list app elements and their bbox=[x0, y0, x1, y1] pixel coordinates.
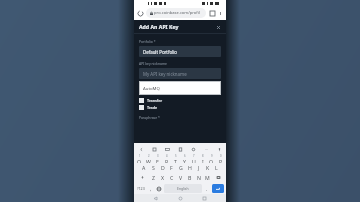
staticText: . bbox=[206, 186, 208, 192]
staticText: Portfolio * bbox=[139, 39, 156, 44]
button[interactable]: 6 bbox=[180, 154, 189, 163]
staticText: 8 bbox=[202, 154, 204, 158]
staticText: S bbox=[152, 164, 155, 171]
button[interactable]: M bbox=[203, 172, 212, 183]
button[interactable]: C bbox=[167, 172, 176, 183]
button[interactable]: A bbox=[139, 163, 149, 172]
staticText: V bbox=[179, 174, 183, 181]
staticText: My API key nickname bbox=[143, 71, 187, 77]
button[interactable]: 5 bbox=[171, 154, 180, 163]
button[interactable]: G bbox=[176, 163, 185, 172]
staticText: Q bbox=[137, 158, 142, 163]
button[interactable]: X bbox=[158, 172, 167, 183]
staticText: Default Portfolio bbox=[143, 49, 178, 55]
button[interactable]: H bbox=[185, 163, 194, 172]
staticText: I bbox=[202, 158, 204, 163]
button[interactable]: My API key nickname bbox=[139, 68, 221, 79]
staticText: E bbox=[156, 158, 159, 163]
staticText: K bbox=[206, 164, 210, 171]
button[interactable]: English bbox=[164, 184, 202, 193]
button[interactable]: 0 bbox=[216, 154, 225, 163]
button[interactable]: Address bar bbox=[146, 8, 206, 18]
staticText: 9 bbox=[211, 154, 213, 158]
button[interactable]: Trade bbox=[139, 105, 221, 110]
button[interactable]: L bbox=[212, 163, 221, 172]
staticText: U bbox=[192, 158, 196, 163]
button[interactable]: Clipboard bbox=[176, 145, 184, 153]
button[interactable]: Recent apps bbox=[201, 195, 208, 202]
button[interactable]: Home bbox=[177, 195, 184, 202]
staticText: F bbox=[170, 164, 173, 171]
button[interactable]: Back bbox=[137, 145, 145, 153]
staticText: 3 bbox=[157, 154, 159, 158]
button[interactable]: Backspace bbox=[212, 172, 225, 183]
button[interactable]: 7 bbox=[189, 154, 198, 163]
staticText: 0 bbox=[220, 154, 222, 158]
staticText: 2 bbox=[148, 154, 150, 158]
staticText: G bbox=[179, 164, 183, 171]
button[interactable]: J bbox=[194, 163, 203, 172]
button[interactable]: Default Portfolio bbox=[139, 46, 221, 57]
button[interactable]: Transfer bbox=[139, 98, 221, 103]
button[interactable]: 2 bbox=[144, 154, 153, 163]
staticText: API key nickname bbox=[139, 61, 168, 66]
button[interactable]: 1 bbox=[135, 154, 144, 163]
staticText: N bbox=[197, 174, 201, 181]
staticText: , bbox=[150, 186, 152, 192]
button[interactable]: V bbox=[176, 172, 185, 183]
button[interactable]: Z bbox=[149, 172, 158, 183]
staticText: pro.coinbase.com/profil bbox=[154, 10, 200, 16]
button[interactable]: Shift bbox=[135, 172, 149, 183]
staticText: L bbox=[215, 164, 218, 171]
staticText: 4 bbox=[166, 154, 168, 158]
button[interactable]: , bbox=[147, 183, 155, 194]
staticText: Z bbox=[152, 174, 155, 181]
button[interactable]: Enter bbox=[212, 184, 224, 193]
button[interactable]: Settings bbox=[189, 145, 197, 153]
staticText: P bbox=[219, 158, 223, 163]
button[interactable]: 9 bbox=[207, 154, 216, 163]
button[interactable]: Voice input bbox=[215, 145, 223, 153]
staticText: H bbox=[188, 164, 192, 171]
staticText: A bbox=[142, 164, 146, 171]
staticText: C bbox=[170, 174, 174, 181]
button[interactable]: Add An API Key bbox=[139, 20, 221, 33]
staticText: 6 bbox=[184, 154, 186, 158]
staticText: M bbox=[205, 174, 210, 181]
button[interactable]: K bbox=[203, 163, 212, 172]
button[interactable]: Reload page bbox=[136, 9, 145, 18]
button[interactable]: 4 bbox=[162, 154, 171, 163]
staticText: R bbox=[165, 158, 169, 163]
button[interactable]: ?123 bbox=[135, 183, 147, 194]
button[interactable]: S bbox=[149, 163, 158, 172]
button[interactable]: GIF bbox=[163, 145, 171, 153]
button[interactable]: . bbox=[203, 183, 211, 194]
staticText: D bbox=[161, 164, 165, 171]
staticText: 1 bbox=[139, 154, 141, 158]
button[interactable]: D bbox=[158, 163, 167, 172]
staticText: Trade bbox=[147, 105, 158, 110]
staticText: English bbox=[177, 186, 189, 191]
staticText: AutoMQ bbox=[143, 85, 160, 91]
staticText: O bbox=[209, 158, 214, 163]
button[interactable]: Back bbox=[152, 195, 159, 202]
button[interactable]: Change language bbox=[155, 183, 163, 194]
staticText: J bbox=[198, 164, 200, 171]
button[interactable]: Stickers bbox=[150, 145, 158, 153]
button[interactable]: N bbox=[194, 172, 203, 183]
button[interactable]: 3 bbox=[153, 154, 162, 163]
button[interactable]: More options bbox=[216, 9, 224, 17]
button[interactable]: Tabs bbox=[208, 9, 216, 17]
staticText: T bbox=[174, 158, 177, 163]
staticText: Add An API Key bbox=[139, 23, 179, 30]
staticText: Y bbox=[183, 158, 186, 163]
button[interactable]: B bbox=[185, 172, 194, 183]
button[interactable]: 8 bbox=[198, 154, 207, 163]
button[interactable]: AutoMQ bbox=[139, 81, 221, 95]
staticText: X bbox=[161, 174, 165, 181]
staticText: W bbox=[146, 158, 151, 163]
staticText: 5 bbox=[175, 154, 177, 158]
staticText: ?123 bbox=[137, 186, 145, 191]
button[interactable]: F bbox=[167, 163, 176, 172]
button[interactable]: More bbox=[202, 145, 210, 153]
